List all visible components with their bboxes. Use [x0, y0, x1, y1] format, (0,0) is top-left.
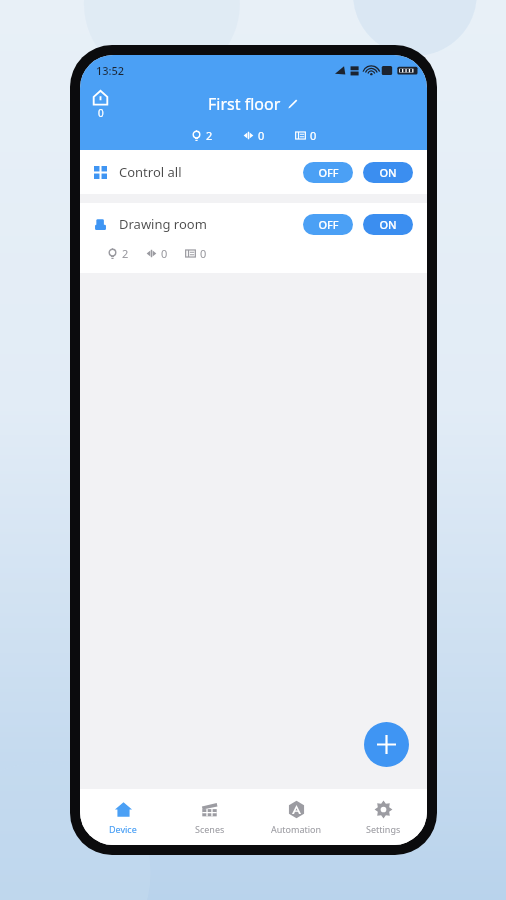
staticText: ON — [379, 217, 397, 232]
staticText: 0 — [258, 128, 265, 143]
button[interactable]: Edit name — [287, 98, 299, 110]
button[interactable]: Control all — [80, 150, 427, 194]
staticText: Control all — [119, 163, 182, 181]
staticText: OFF — [318, 165, 339, 180]
staticText: 2 — [122, 246, 129, 261]
staticText: 0 — [310, 128, 317, 143]
staticText: Automation — [271, 823, 322, 835]
button[interactable]: ON — [363, 214, 413, 235]
button[interactable]: Settings — [340, 789, 427, 845]
button[interactable]: Automation — [253, 789, 340, 845]
button[interactable]: Device — [80, 789, 166, 845]
button[interactable]: Home — [92, 89, 109, 120]
staticText: 2 — [206, 128, 213, 143]
staticText: ON — [379, 165, 397, 180]
button[interactable]: ON — [363, 162, 413, 183]
staticText: Scenes — [195, 823, 225, 835]
button[interactable]: Drawing room — [80, 203, 427, 273]
staticText: OFF — [318, 217, 339, 232]
staticText: 0 — [200, 246, 207, 261]
staticText: Device — [109, 823, 137, 835]
staticText: Settings — [366, 823, 401, 835]
staticText: First floor — [208, 93, 281, 115]
button[interactable]: Scenes — [166, 789, 253, 845]
button[interactable]: Add — [364, 722, 409, 767]
button[interactable]: OFF — [303, 162, 353, 183]
staticText: Drawing room — [119, 215, 207, 233]
staticText: 13:52 — [96, 63, 125, 78]
button[interactable]: OFF — [303, 214, 353, 235]
staticText: 0 — [161, 246, 168, 261]
staticText: 0 — [98, 106, 104, 120]
